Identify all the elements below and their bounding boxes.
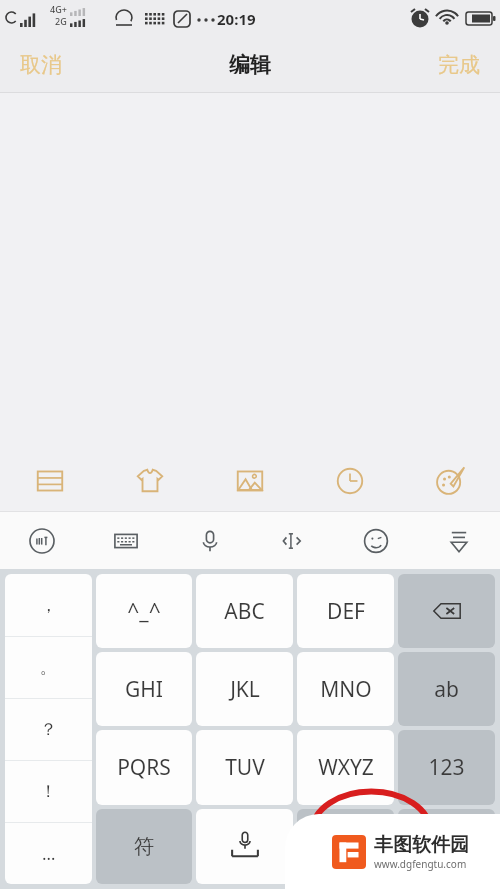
staticText: 123 [428,753,465,782]
button[interactable]: WXYZ [297,730,394,805]
button[interactable]: ， [5,574,92,636]
button[interactable]: ab [398,652,495,726]
button[interactable]: ABC [196,574,293,648]
button[interactable]: 。 [5,637,92,698]
button[interactable]: 中/英 [297,809,394,884]
staticText: www.dgfengtu.com [374,857,467,871]
button[interactable]: 完成 [428,46,490,84]
staticText: 取消 [20,52,62,78]
staticText: 符 [134,834,154,859]
button[interactable]: DEF [297,574,394,648]
staticText: DEF [327,597,365,626]
button[interactable]: Space [196,809,293,884]
button[interactable]: IME logo [0,512,84,569]
button[interactable]: ？ [5,699,92,760]
staticText: PQRS [117,753,171,782]
staticText: 。 [40,657,57,678]
staticText: JKL [230,675,260,704]
staticText: ABC [224,597,265,626]
button[interactable]: Palette [400,451,500,511]
staticText: ！ [40,781,57,802]
staticText: 2G [55,15,67,27]
button[interactable]: Cursor move [251,512,334,569]
button[interactable]: Backspace [398,574,495,648]
button[interactable]: 123 [398,730,495,805]
staticText: 完成 [438,52,480,78]
button[interactable]: MNO [297,652,394,726]
button[interactable]: Emoji [334,512,417,569]
staticText: … [42,842,56,865]
staticText: WXYZ [318,753,374,782]
button[interactable]: ^_^ [96,574,192,648]
button[interactable]: … [5,823,92,884]
button[interactable]: GHI [96,652,192,726]
button[interactable]: 符 [96,809,192,884]
button[interactable]: PQRS [96,730,192,805]
button[interactable]: Enter [398,809,495,884]
button[interactable]: ！ [5,761,92,822]
staticText: ab [434,675,459,704]
staticText: ^_^ [127,597,161,626]
button[interactable]: 取消 [10,46,72,84]
staticText: MNO [320,675,372,704]
staticText: 20:19 [217,9,256,29]
button[interactable]: Hide keyboard [417,512,500,569]
button[interactable]: TUV [196,730,293,805]
button[interactable]: JKL [196,652,293,726]
button[interactable]: Image [200,451,300,511]
staticText: TUV [225,753,265,782]
button[interactable]: Keyboard layout [84,512,168,569]
staticText: GHI [125,675,163,704]
staticText: 编辑 [229,52,271,78]
button[interactable]: Voice input [168,512,251,569]
button[interactable]: Clock [300,451,400,511]
button[interactable]: Clothing [100,451,200,511]
staticText: 丰图软件园 [374,833,469,857]
staticText: 中/英 [322,833,370,860]
staticText: ？ [40,719,57,740]
staticText: ， [40,595,57,616]
button[interactable]: Text [0,451,100,511]
staticText: 4G+ [50,3,67,15]
